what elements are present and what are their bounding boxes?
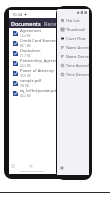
button[interactable]: Documents bbox=[10, 20, 42, 27]
staticText: Thumbnail bbox=[66, 27, 86, 32]
button[interactable]: Flat List bbox=[57, 16, 89, 25]
staticText: 21.7 KB bbox=[20, 54, 31, 58]
staticText: 33.0 KB bbox=[20, 74, 31, 78]
staticText: Name Descend bbox=[66, 54, 89, 59]
button[interactable]: sample.pdf bbox=[9, 78, 63, 88]
staticText: 12.4 KB bbox=[20, 34, 31, 38]
staticText: 10:34 bbox=[12, 12, 23, 17]
button[interactable]: Home bbox=[28, 163, 34, 169]
staticText: Recent bbox=[44, 20, 62, 27]
button[interactable]: Cover Flow bbox=[57, 34, 89, 43]
staticText: Deposition bbox=[20, 48, 41, 53]
staticText: Time Ascend bbox=[66, 63, 89, 68]
button[interactable]: Name Ascend bbox=[57, 43, 89, 52]
staticText: Credit Card Statement bbox=[20, 38, 62, 43]
button[interactable]: Time Descend bbox=[57, 70, 89, 79]
staticText: Documents bbox=[11, 20, 41, 27]
staticText: Agreement bbox=[20, 28, 42, 33]
button[interactable]: Thumbnail bbox=[57, 25, 89, 34]
button[interactable]: Time Ascend bbox=[57, 61, 89, 70]
button[interactable]: Name Descend bbox=[57, 52, 89, 61]
button[interactable]: Recent bbox=[43, 20, 63, 27]
button[interactable]: Credit Card Statement bbox=[9, 38, 63, 48]
staticText: sample.pdf bbox=[20, 78, 42, 83]
staticText: Cover Flow bbox=[66, 36, 86, 41]
staticText: wj_hcfhd.pxxdw.pdf bbox=[20, 88, 58, 93]
button[interactable]: Partnership_Agreement bbox=[9, 58, 63, 68]
staticText: Partnership_Agreement bbox=[20, 58, 63, 63]
button[interactable]: Power of Attorney bbox=[9, 68, 63, 78]
button[interactable]: Back bbox=[59, 165, 64, 170]
staticText: 9.8 KB bbox=[20, 84, 29, 88]
staticText: Power of Attorney bbox=[20, 68, 54, 73]
staticText: Time Descend bbox=[66, 72, 89, 77]
staticText: 84.1 KB bbox=[20, 44, 31, 48]
staticText: Name Ascend bbox=[66, 45, 89, 50]
button[interactable]: Deposition bbox=[9, 48, 63, 58]
button[interactable]: wj_hcfhd.pxxdw.pdf bbox=[9, 88, 63, 98]
staticText: 44.2 KB bbox=[20, 94, 31, 98]
button[interactable]: Back bbox=[10, 163, 16, 169]
staticText: Flat List bbox=[66, 18, 80, 23]
button[interactable]: Agreement bbox=[9, 28, 63, 38]
staticText: 65.3 KB bbox=[20, 64, 31, 68]
